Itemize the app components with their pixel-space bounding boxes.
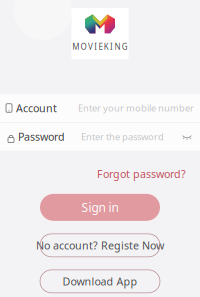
staticText: Enter the password — [81, 130, 164, 143]
button[interactable]: Sign in — [40, 194, 160, 221]
staticText: Account — [16, 101, 57, 115]
staticText: Password — [18, 130, 65, 144]
button[interactable]: No account? Registe Now — [40, 234, 160, 257]
button[interactable]: Show password — [182, 133, 192, 140]
staticText: MOVIEKING — [72, 41, 128, 52]
staticText: Download App — [62, 274, 137, 288]
staticText: Forgot password? — [97, 167, 186, 181]
staticText: Sign in — [81, 199, 118, 215]
button[interactable]: Forgot password? — [97, 167, 186, 181]
button[interactable]: Download App — [40, 270, 160, 293]
staticText: No account? Registe Now — [36, 238, 164, 252]
staticText: Enter your mobile number — [78, 102, 194, 114]
